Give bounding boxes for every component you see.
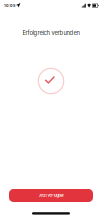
staticText: Erfolgreich verbunden: [22, 29, 79, 36]
button[interactable]: Jetzt verfügbar: [9, 189, 93, 202]
staticText: 10:05: [4, 3, 15, 8]
staticText: Jetzt verfügbar: [38, 193, 63, 198]
